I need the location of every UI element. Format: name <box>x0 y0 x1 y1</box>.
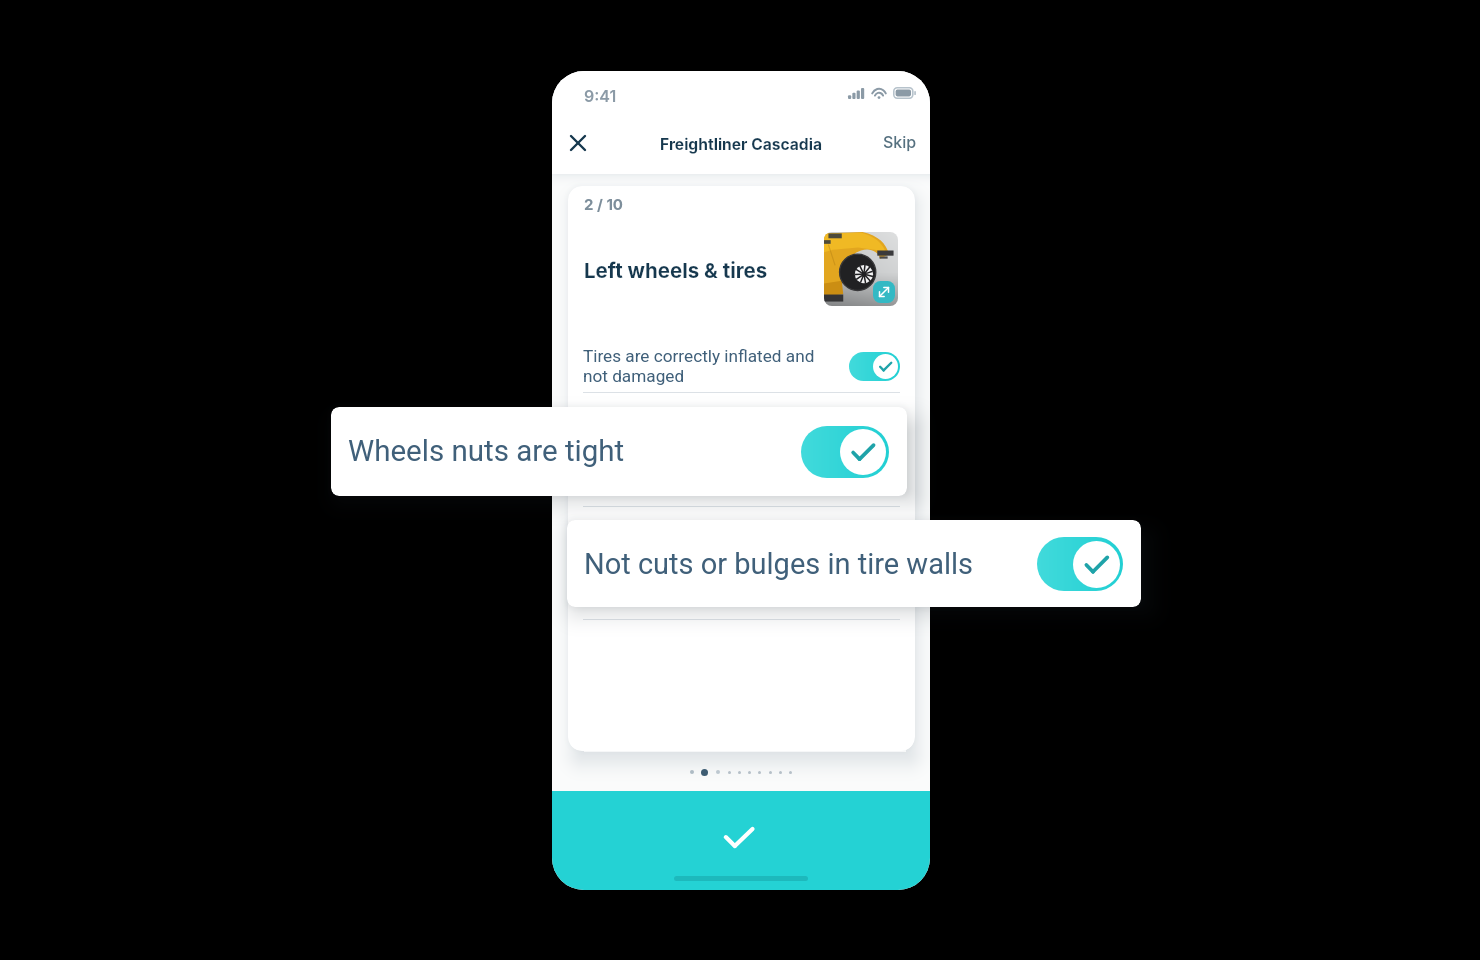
button[interactable]: Wheels nuts are tight <box>568 392 915 506</box>
staticText: Wheels nuts are tight <box>348 434 801 469</box>
staticText: Freightliner Cascadia <box>660 135 822 154</box>
button[interactable]: Confirm and continue <box>552 791 930 890</box>
button[interactable]: Tires are correctly inflated and not dam… <box>568 341 915 392</box>
staticText: Tires are correctly inflated and not dam… <box>583 346 835 387</box>
button[interactable]: Expand photo <box>873 281 895 303</box>
button[interactable]: Checklist item, checked <box>1037 537 1123 591</box>
staticText: 2 / 10 <box>584 195 623 213</box>
staticText: 9:41 <box>584 86 617 105</box>
button[interactable]: Checklist item, checked <box>801 426 889 478</box>
button[interactable]: Not cuts or bulges in tire walls <box>567 520 1141 607</box>
staticText: Left wheels & tires <box>584 258 768 283</box>
button[interactable]: Close <box>563 128 593 158</box>
button[interactable]: Checklist item, checked <box>849 435 900 464</box>
button[interactable]: Checklist item, checked <box>849 548 900 577</box>
staticText: Skip <box>883 132 917 151</box>
button[interactable]: Skip <box>883 132 917 151</box>
staticText: Not cuts or bulges in tire walls <box>584 547 1037 581</box>
staticText: Wheels nuts are tight <box>583 439 835 459</box>
button[interactable]: Open reference photo <box>824 232 898 306</box>
button[interactable]: Wheels nuts are tight <box>331 407 907 496</box>
staticText: Not cuts or bulges in tire walls <box>583 553 835 573</box>
button[interactable]: Not cuts or bulges in tire walls <box>568 506 915 619</box>
button[interactable]: Checklist item, checked <box>849 352 900 381</box>
